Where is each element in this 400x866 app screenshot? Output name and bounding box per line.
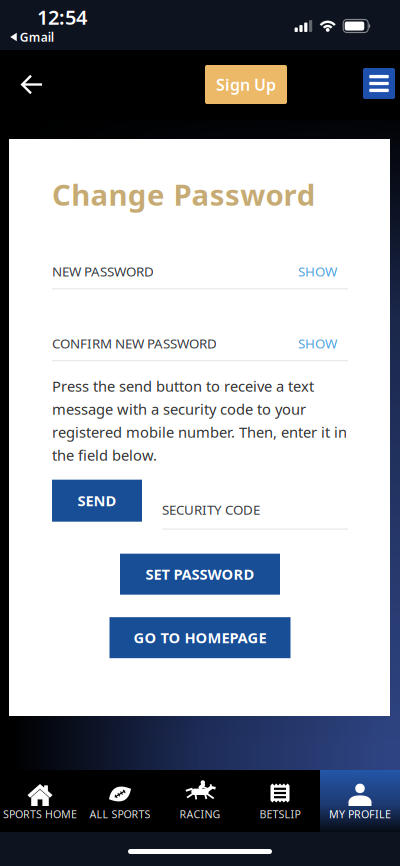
button[interactable]: SHOW — [298, 334, 337, 352]
button[interactable]: Return to Gmail — [10, 29, 54, 45]
button[interactable]: ALL SPORTS — [80, 770, 160, 832]
staticText: RACING — [179, 807, 220, 821]
staticText: message with a security code to your — [52, 399, 306, 419]
button[interactable]: Back — [13, 66, 51, 102]
staticText: SEND — [77, 491, 116, 510]
staticText: SHOW — [298, 334, 337, 352]
button[interactable]: SEND — [52, 480, 142, 522]
button[interactable]: Menu — [363, 68, 395, 99]
button[interactable]: Sign Up — [205, 65, 287, 104]
staticText: Sign Up — [216, 74, 276, 95]
staticText: SHOW — [298, 262, 337, 280]
button[interactable]: RACING — [160, 770, 240, 832]
staticText: Press the send button to receive a text — [52, 376, 314, 396]
button[interactable]: BETSLIP — [240, 770, 320, 832]
button[interactable]: SET PASSWORD — [120, 554, 280, 595]
staticText: MY PROFILE — [329, 807, 391, 821]
staticText: BETSLIP — [259, 807, 300, 821]
button[interactable]: SHOW — [298, 262, 337, 280]
staticText: SECURITY CODE — [162, 501, 260, 518]
staticText: 12:54 — [37, 4, 87, 30]
staticText: NEW PASSWORD — [52, 262, 154, 280]
button[interactable]: GO TO HOMEPAGE — [109, 617, 290, 658]
button[interactable]: MY PROFILE — [320, 770, 400, 832]
staticText: registered mobile number. Then, enter it… — [52, 422, 347, 442]
staticText: ALL SPORTS — [89, 807, 150, 821]
staticText: CONFIRM NEW PASSWORD — [52, 334, 217, 352]
staticText: SET PASSWORD — [145, 564, 254, 584]
staticText: the field below. — [52, 445, 157, 465]
staticText: Change Password — [52, 175, 316, 214]
staticText: GO TO HOMEPAGE — [133, 628, 266, 647]
staticText: Gmail — [20, 29, 54, 45]
button[interactable]: SPORTS HOME — [0, 770, 80, 832]
staticText: SPORTS HOME — [3, 807, 77, 821]
